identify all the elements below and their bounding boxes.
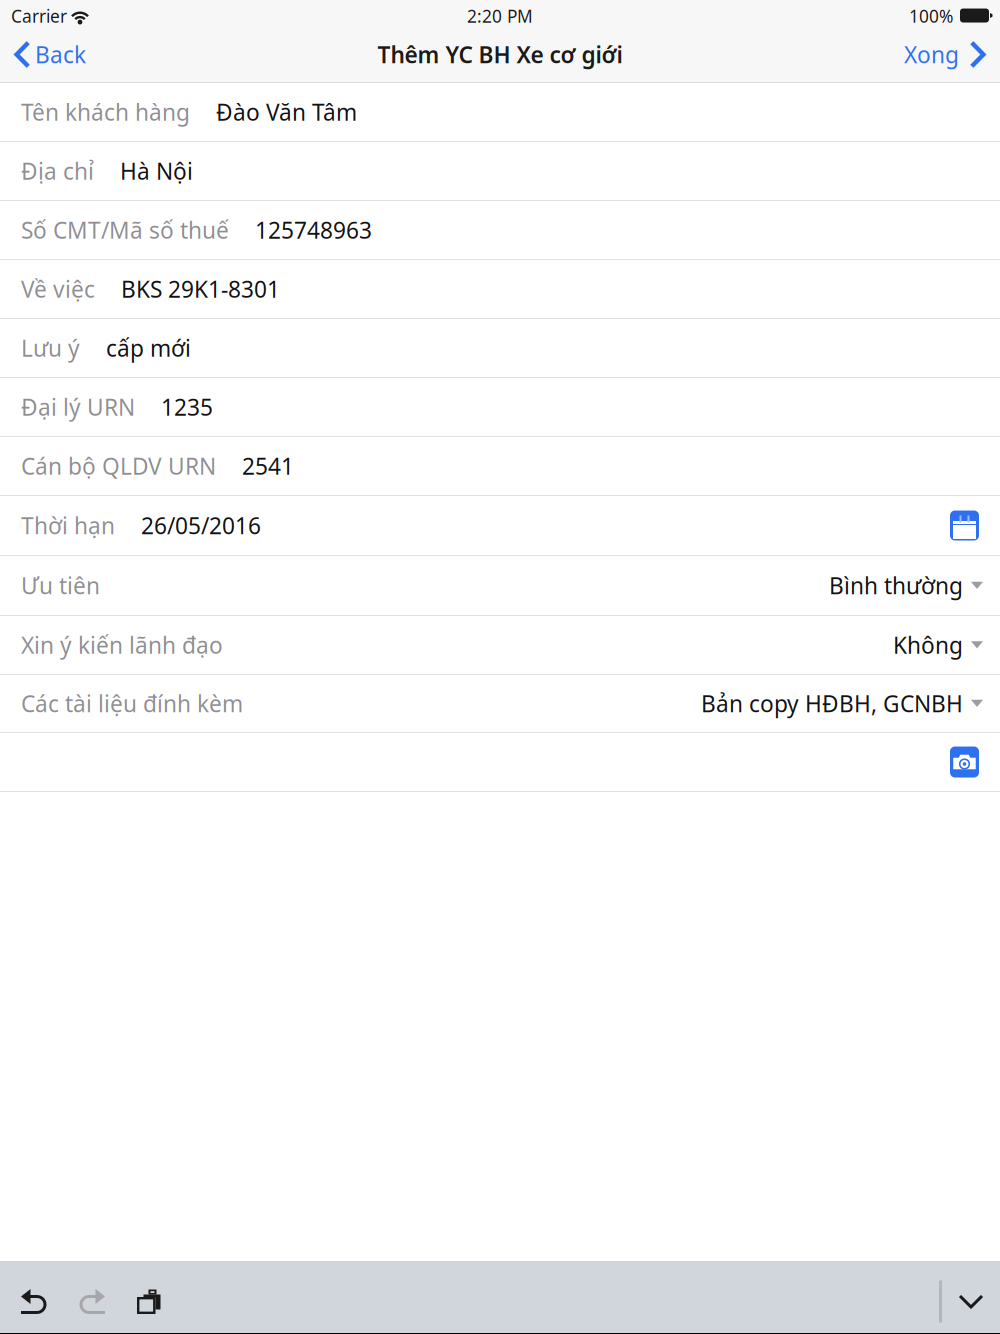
staticText: Địa chỉ [21,156,94,186]
staticText: Đào Văn Tâm [216,97,357,127]
staticText: Xin ý kiến lãnh đạo [21,630,223,660]
staticText: Thêm YC BH Xe cơ giới [377,39,622,69]
staticText: Thời hạn [21,510,115,540]
button[interactable]: Hide Keyboard [942,1265,1000,1334]
staticText: 100% [909,4,953,27]
staticText: Tên khách hàng [21,97,190,127]
staticText: cấp mới [106,333,191,363]
button[interactable]: Về việc [21,260,979,318]
staticText: Ưu tiên [21,570,100,600]
button[interactable]: Lưu ý [21,319,979,377]
staticText: Không [893,630,963,660]
button[interactable]: Paste [121,1265,179,1334]
staticText: 1235 [161,392,213,422]
staticText: Xong [904,39,959,69]
staticText: 125748963 [255,215,372,245]
button[interactable]: Số CMT/Mã số thuế [21,201,979,259]
staticText: Hà Nội [120,156,193,186]
button[interactable]: Đại lý URN [21,378,979,436]
staticText: Bản copy HĐBH, GCNBH [701,688,963,718]
button[interactable]: Tên khách hàng [21,83,979,141]
staticText: 2541 [242,451,294,481]
button[interactable]: Xin ý kiến lãnh đạo [0,616,1000,675]
staticText: Đại lý URN [21,392,135,422]
button[interactable]: Redo [63,1265,121,1334]
staticText: Về việc [21,274,95,304]
staticText: Cán bộ QLDV URN [21,451,216,481]
staticText: 26/05/2016 [141,510,261,540]
staticText: Các tài liệu đính kèm [21,688,243,718]
button[interactable]: Thời hạn [21,496,950,555]
staticText: Back [35,39,86,69]
button[interactable]: Ưu tiên [0,556,1000,616]
staticText: Lưu ý [21,333,80,363]
staticText: Số CMT/Mã số thuế [21,215,229,245]
button[interactable]: Địa chỉ [21,142,979,200]
button[interactable]: Pick date [950,510,979,540]
staticText: Bình thường [829,570,963,600]
button[interactable]: Back [0,29,100,79]
staticText: BKS 29K1-8301 [121,274,280,304]
staticText: 2:20 PM [467,4,533,27]
button[interactable]: Take photo [950,746,979,777]
staticText: Carrier [11,4,67,27]
button[interactable]: Các tài liệu đính kèm [0,675,1000,733]
button[interactable]: Xong [890,29,1000,79]
button[interactable]: Undo [5,1265,63,1334]
button[interactable]: Cán bộ QLDV URN [21,437,979,495]
